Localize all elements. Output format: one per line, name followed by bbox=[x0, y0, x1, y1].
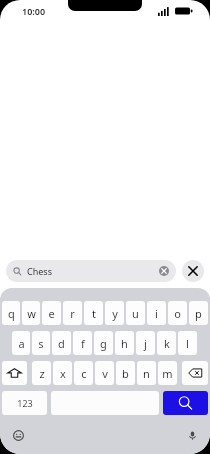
button[interactable]: d bbox=[52, 331, 71, 355]
button[interactable]: e bbox=[42, 301, 61, 325]
button[interactable]: q bbox=[2, 301, 20, 325]
button[interactable]: Chess bbox=[6, 260, 176, 282]
button[interactable]: o bbox=[168, 301, 187, 325]
staticText: q bbox=[8, 306, 15, 321]
staticText: g bbox=[100, 336, 107, 351]
button[interactable]: v bbox=[95, 361, 114, 385]
button[interactable]: n bbox=[137, 361, 156, 385]
button[interactable]: y bbox=[105, 301, 124, 325]
button[interactable]: l bbox=[178, 331, 197, 355]
button[interactable]: Search bbox=[163, 391, 208, 415]
button[interactable]: c bbox=[74, 361, 93, 385]
staticText: k bbox=[164, 336, 170, 351]
staticText: u bbox=[132, 306, 139, 321]
button[interactable]: b bbox=[116, 361, 135, 385]
staticText: Chess bbox=[27, 265, 159, 277]
button[interactable]: k bbox=[157, 331, 176, 355]
staticText: d bbox=[58, 336, 65, 351]
button[interactable]: i bbox=[147, 301, 166, 325]
button[interactable]: Close search bbox=[182, 260, 204, 282]
staticText: h bbox=[121, 336, 128, 351]
staticText: j bbox=[144, 336, 147, 351]
staticText: s bbox=[38, 336, 44, 351]
staticText: z bbox=[39, 366, 45, 381]
staticText: i bbox=[155, 306, 158, 321]
staticText: b bbox=[122, 366, 129, 381]
button[interactable]: w bbox=[22, 301, 40, 325]
button[interactable]: s bbox=[32, 331, 50, 355]
staticText: x bbox=[60, 366, 66, 381]
button[interactable]: m bbox=[158, 361, 177, 385]
button[interactable]: x bbox=[53, 361, 72, 385]
staticText: r bbox=[70, 306, 75, 321]
staticText: p bbox=[195, 306, 202, 321]
staticText: l bbox=[186, 336, 189, 351]
button[interactable]: a bbox=[12, 331, 30, 355]
button[interactable]: Clear text bbox=[159, 266, 169, 276]
button[interactable]: u bbox=[126, 301, 145, 325]
button[interactable]: t bbox=[84, 301, 103, 325]
button[interactable]: Backspace bbox=[182, 361, 208, 385]
staticText: t bbox=[92, 306, 96, 321]
staticText: f bbox=[81, 336, 85, 351]
staticText: v bbox=[102, 366, 108, 381]
button[interactable]: h bbox=[115, 331, 134, 355]
staticText: w bbox=[27, 306, 36, 321]
staticText: 10:00 bbox=[22, 5, 46, 17]
staticText: y bbox=[112, 306, 118, 321]
staticText: c bbox=[81, 366, 87, 381]
button[interactable]: f bbox=[73, 331, 92, 355]
button[interactable]: Emoji bbox=[10, 427, 26, 443]
button[interactable]: 123 bbox=[2, 391, 47, 415]
staticText: e bbox=[48, 306, 55, 321]
staticText: n bbox=[143, 366, 150, 381]
button[interactable]: z bbox=[32, 361, 51, 385]
staticText: m bbox=[162, 366, 173, 381]
button[interactable]: p bbox=[189, 301, 208, 325]
staticText: a bbox=[18, 336, 25, 351]
staticText: 123 bbox=[17, 397, 33, 409]
button[interactable]: Shift bbox=[2, 361, 27, 385]
staticText: o bbox=[174, 306, 181, 321]
button[interactable]: r bbox=[63, 301, 82, 325]
button[interactable]: j bbox=[136, 331, 155, 355]
button[interactable]: Voice input bbox=[184, 427, 200, 443]
button[interactable]: g bbox=[94, 331, 113, 355]
